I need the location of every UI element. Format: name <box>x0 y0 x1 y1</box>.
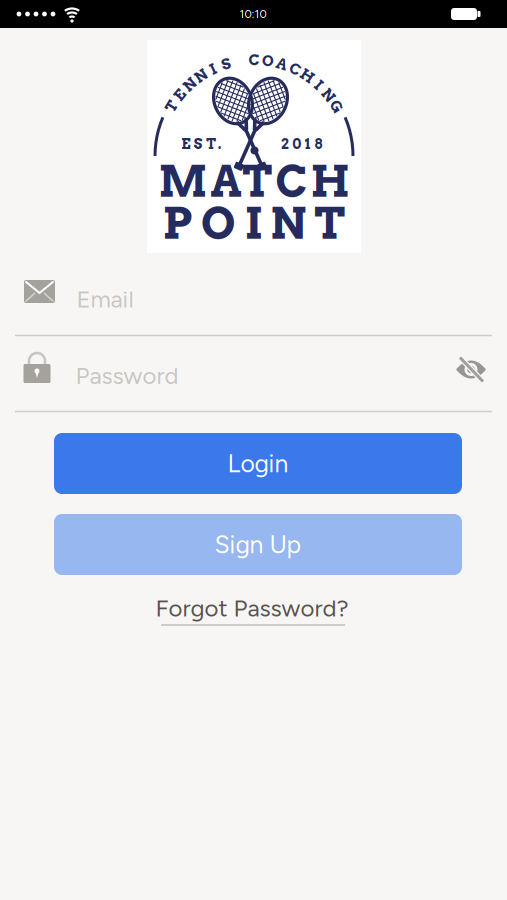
staticText: H <box>300 67 314 85</box>
staticText: 10:10 <box>239 7 266 21</box>
staticText: A <box>276 55 287 73</box>
staticText: E <box>175 86 185 104</box>
staticText: O <box>262 52 274 70</box>
staticText: Sign Up <box>214 530 301 559</box>
staticText: N <box>184 76 196 94</box>
staticText: EST. <box>181 135 222 152</box>
button[interactable]: Sign Up <box>54 514 462 575</box>
staticText: 2018 <box>281 135 322 152</box>
staticText: I <box>315 76 321 94</box>
staticText: I <box>210 60 216 78</box>
button[interactable]: Show password <box>453 353 489 385</box>
staticText: C <box>248 51 259 69</box>
staticText: Forgot Password? <box>155 594 348 622</box>
staticText: POINT <box>162 196 345 250</box>
staticText: C <box>289 60 300 78</box>
staticText: Login <box>227 449 288 478</box>
staticText: S <box>222 55 231 73</box>
staticText: Email <box>76 285 133 313</box>
staticText: N <box>195 67 207 85</box>
staticText: T <box>167 98 177 115</box>
staticText: MATCH <box>158 156 349 207</box>
staticText: G <box>330 98 342 115</box>
staticText: Password <box>75 361 178 390</box>
button[interactable]: Forgot Password? <box>152 588 352 632</box>
button[interactable]: Login <box>54 433 462 494</box>
staticText: N <box>322 86 334 104</box>
